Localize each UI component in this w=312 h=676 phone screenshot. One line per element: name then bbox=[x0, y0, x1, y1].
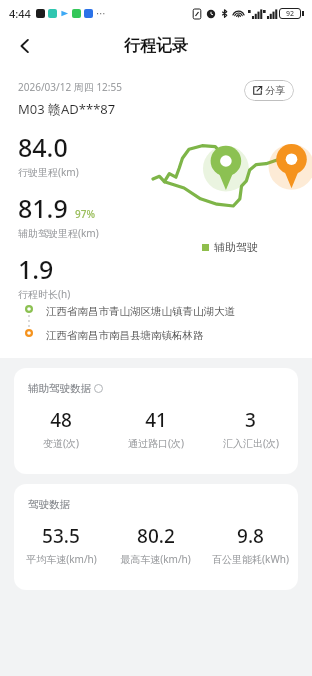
staticText: 辅助驾驶 bbox=[214, 240, 258, 254]
staticText: M03 赣AD***87 bbox=[18, 100, 116, 118]
button[interactable]: 分享 bbox=[244, 80, 294, 101]
staticText: 84.0 bbox=[18, 130, 68, 164]
staticText: 2026/03/12 周四 12:55 bbox=[18, 80, 122, 94]
staticText: 辅助驾驶里程(km) bbox=[18, 226, 99, 240]
staticText: 9.8 bbox=[237, 523, 264, 549]
staticText: 江西省南昌市南昌县塘南镇柘林路 bbox=[46, 329, 204, 342]
staticText: 最高车速(km/h) bbox=[120, 552, 191, 566]
staticText: 行程记录 bbox=[124, 36, 188, 56]
staticText: 分享 bbox=[265, 84, 285, 97]
staticText: 行程时长(h) bbox=[18, 287, 71, 301]
staticText: ⋯ bbox=[96, 8, 106, 20]
staticText: 1.9 bbox=[18, 252, 54, 286]
staticText: 通过路口(次) bbox=[128, 436, 184, 450]
staticText: 48 bbox=[50, 407, 72, 433]
staticText: 平均车速(km/h) bbox=[26, 552, 97, 566]
staticText: 行驶里程(km) bbox=[18, 165, 79, 179]
staticText: 江西省南昌市青山湖区塘山镇青山湖大道 bbox=[46, 305, 235, 318]
staticText: 81.9 bbox=[18, 191, 68, 225]
staticText: 97% bbox=[75, 207, 95, 221]
staticText: 变道(次) bbox=[43, 436, 79, 450]
button[interactable]: 驾驶数据 bbox=[14, 484, 298, 590]
button[interactable]: 辅助驾驶数据 bbox=[14, 368, 298, 474]
staticText: 80.2 bbox=[137, 523, 175, 549]
staticText: 辅助驾驶数据 bbox=[28, 382, 91, 395]
staticText: 92 bbox=[286, 9, 295, 19]
button[interactable]: Back bbox=[8, 29, 42, 63]
staticText: 3 bbox=[245, 407, 256, 433]
staticText: 41 bbox=[145, 407, 167, 433]
staticText: 驾驶数据 bbox=[28, 498, 70, 511]
staticText: 百公里能耗(kWh) bbox=[212, 552, 289, 566]
staticText: 53.5 bbox=[42, 523, 80, 549]
staticText: 4:44 bbox=[9, 6, 31, 21]
staticText: 汇入汇出(次) bbox=[223, 436, 279, 450]
